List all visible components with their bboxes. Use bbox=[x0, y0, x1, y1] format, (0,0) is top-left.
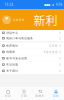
staticText: 账号与安全设置 bbox=[6, 57, 27, 60]
button[interactable]: 首页 bbox=[0, 87, 16, 100]
staticText: 优惠券 bbox=[6, 50, 15, 54]
staticText: 2张可使用 bbox=[44, 50, 58, 54]
button[interactable]: 优惠券 bbox=[0, 49, 64, 55]
button[interactable]: 点击登录 bbox=[0, 15, 64, 24]
button[interactable]: 消息中心 bbox=[0, 30, 64, 35]
staticText: 消息中心 bbox=[6, 31, 18, 34]
staticText: 我的 bbox=[53, 94, 59, 97]
button[interactable]: 关于我们 bbox=[0, 68, 64, 74]
staticText: 首页 bbox=[5, 94, 11, 97]
button[interactable]: 账号与安全设置 bbox=[0, 55, 64, 61]
staticText: ●●● ▰ 83% bbox=[44, 3, 62, 6]
button[interactable]: 收货地址 bbox=[0, 42, 64, 49]
button[interactable]: 购物车 bbox=[32, 87, 48, 100]
button[interactable]: 常见问题 bbox=[0, 61, 64, 68]
button[interactable]: 分类 bbox=[16, 87, 32, 100]
staticText: 收货地址 bbox=[6, 44, 18, 47]
staticText: 购物车 bbox=[35, 94, 44, 97]
staticText: 常见问题 bbox=[6, 63, 18, 66]
staticText: 点击登录 bbox=[13, 18, 25, 21]
staticText: 新利 bbox=[33, 11, 57, 28]
staticText: 关于我们 bbox=[6, 69, 18, 72]
staticText: 分类 bbox=[21, 94, 27, 97]
button[interactable]: 我的订单与售后服务 bbox=[0, 35, 64, 41]
staticText: 去设置 bbox=[49, 44, 58, 47]
button[interactable]: 我的 bbox=[48, 87, 64, 100]
staticText: 我的订单与售后服务 bbox=[6, 37, 33, 40]
staticText: 10:24 bbox=[4, 3, 13, 6]
